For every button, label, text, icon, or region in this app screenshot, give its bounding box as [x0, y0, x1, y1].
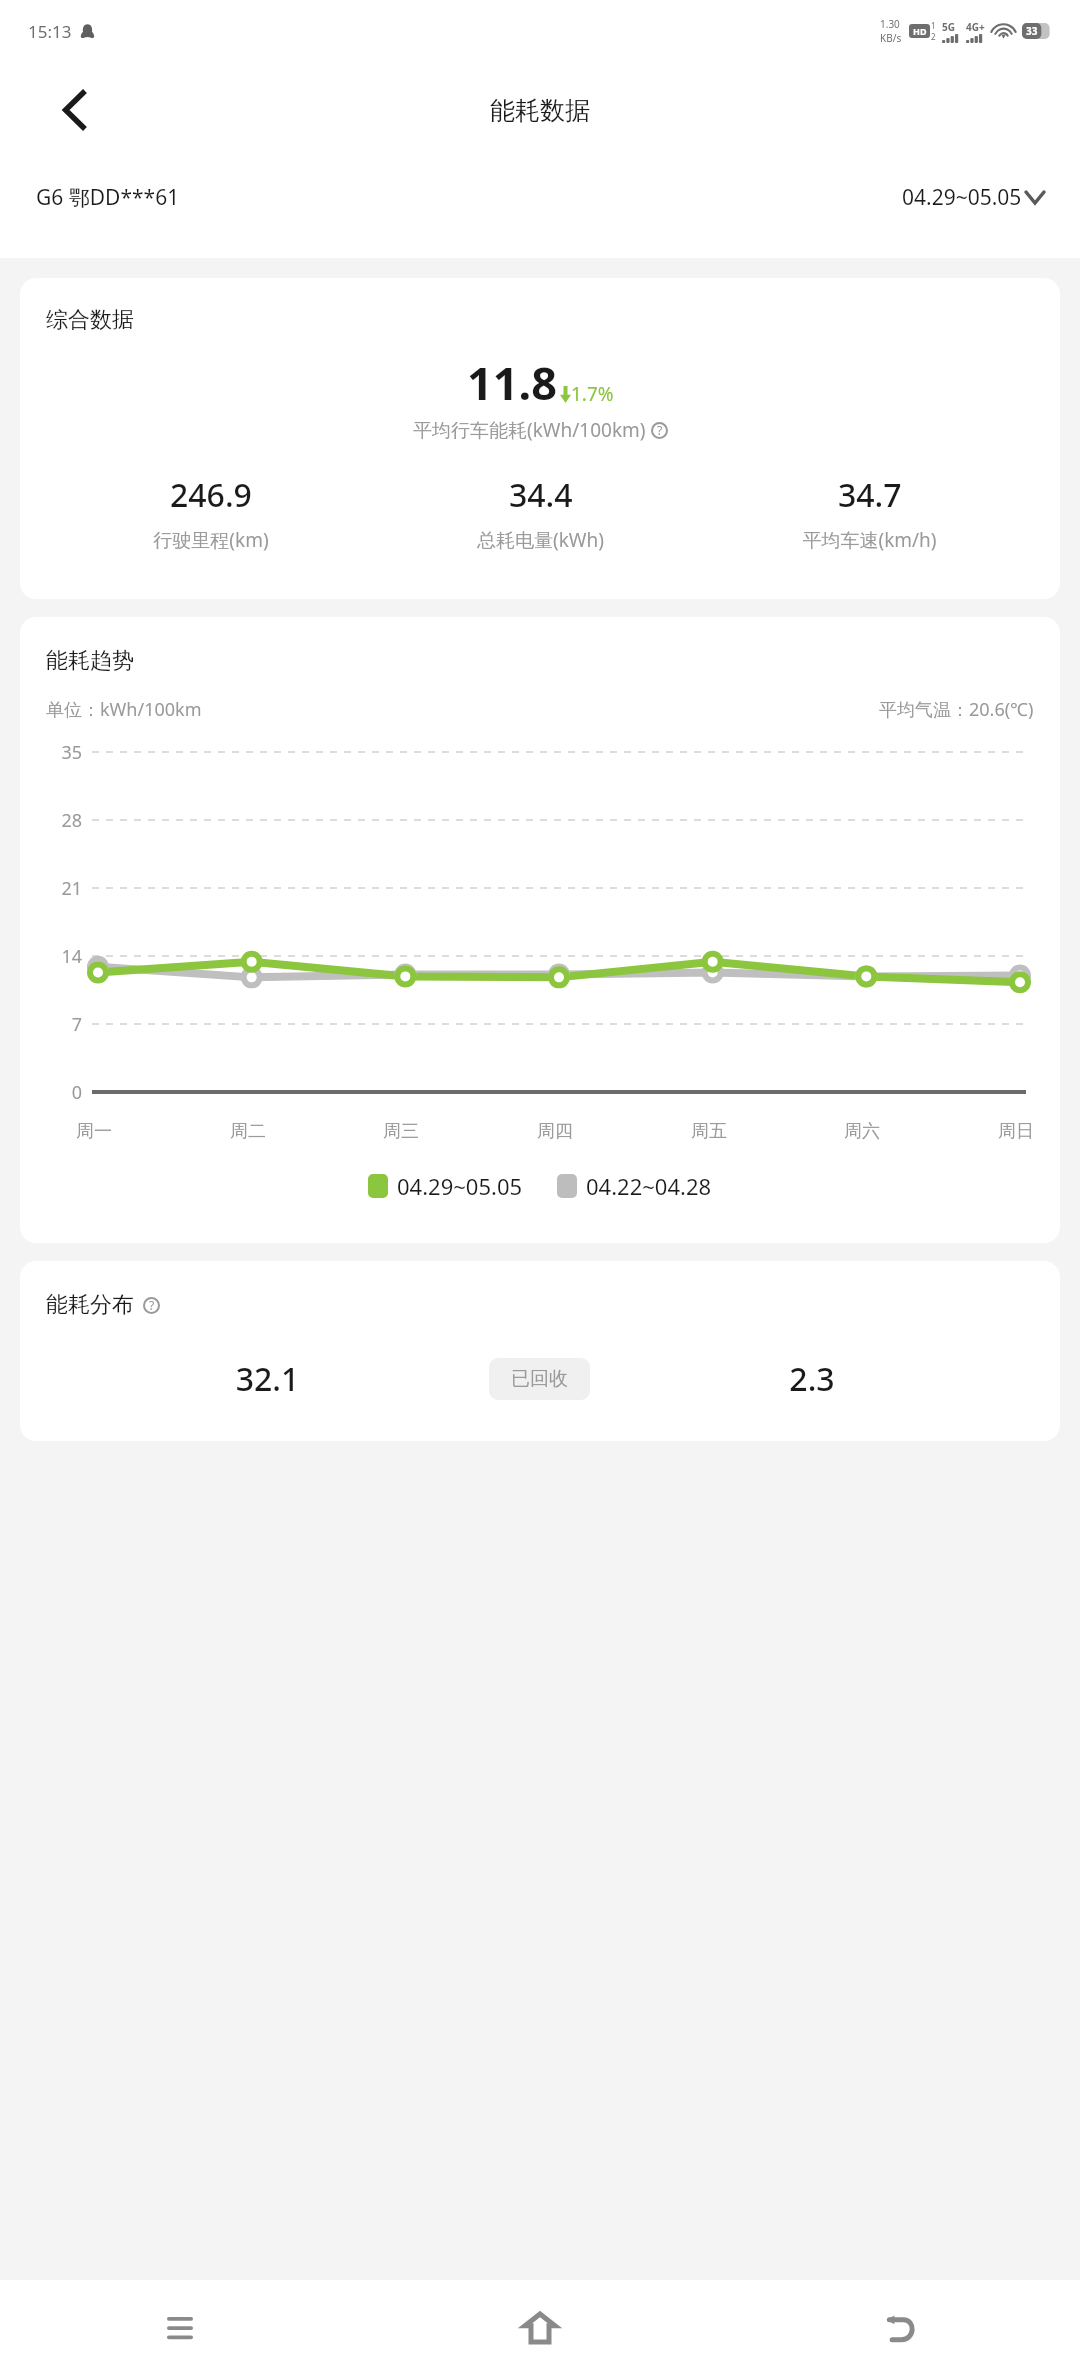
staticText: 1.7% — [571, 381, 614, 407]
button[interactable]: 34.7 — [705, 473, 1034, 553]
staticText: 11.8 — [467, 352, 557, 413]
staticText: 周六 — [844, 1120, 880, 1143]
staticText: 周一 — [76, 1120, 112, 1143]
staticText: 4G+ — [966, 20, 985, 34]
staticText: 2.3 — [590, 1357, 1034, 1401]
staticText: 33 — [1026, 24, 1038, 38]
staticText: 21 — [46, 876, 82, 901]
staticText: 周四 — [537, 1120, 573, 1143]
staticText: 1 — [931, 20, 936, 31]
button[interactable]: 246.9 — [46, 473, 376, 553]
staticText: 32.1 — [46, 1357, 489, 1401]
staticText: 能耗趋势 — [46, 647, 134, 675]
button[interactable]: 已回收 — [489, 1358, 590, 1400]
staticText: 28 — [46, 808, 82, 833]
button[interactable]: 04.22~04.28 — [557, 1171, 712, 1201]
button[interactable]: 34.4 — [376, 473, 705, 553]
staticText: 综合数据 — [46, 306, 134, 334]
staticText: 周三 — [383, 1120, 419, 1143]
button[interactable]: 04.29~05.05 — [368, 1171, 523, 1201]
staticText: HD — [913, 25, 927, 37]
staticText: 0 — [46, 1080, 82, 1105]
staticText: 15:13 — [28, 20, 72, 43]
staticText: 14 — [46, 944, 82, 969]
staticText: 34.4 — [509, 473, 573, 517]
staticText: KB/s — [880, 31, 902, 45]
staticText: 5G — [942, 20, 955, 34]
staticText: ? — [149, 1297, 155, 1314]
staticText: 246.9 — [170, 473, 252, 517]
staticText: 平均行车能耗(kWh/100km) — [413, 417, 646, 443]
button[interactable]: Home — [360, 2280, 720, 2376]
staticText: 7 — [46, 1012, 82, 1037]
staticText: 周日 — [998, 1120, 1034, 1143]
button[interactable]: Back — [44, 80, 104, 140]
staticText: 单位：kWh/100km — [46, 697, 202, 722]
button[interactable]: Back — [720, 2280, 1080, 2376]
button[interactable]: 综合数据 — [20, 278, 1060, 599]
staticText: 周二 — [230, 1120, 266, 1143]
staticText: 1.30 — [880, 17, 900, 31]
staticText: 平均车速(km/h) — [802, 527, 937, 553]
button[interactable]: 能耗分布 — [20, 1261, 1060, 1441]
staticText: 已回收 — [511, 1367, 568, 1391]
staticText: 总耗电量(kWh) — [477, 527, 604, 553]
staticText: 行驶里程(km) — [153, 527, 269, 553]
staticText: 能耗数据 — [490, 95, 590, 126]
button[interactable]: 04.29~05.05 — [902, 183, 1044, 212]
staticText: 周五 — [691, 1120, 727, 1143]
staticText: 2 — [931, 31, 936, 42]
staticText: 04.22~04.28 — [586, 1171, 712, 1201]
staticText: 35 — [46, 740, 82, 765]
staticText: ? — [657, 422, 663, 439]
staticText: 能耗分布 — [46, 1291, 134, 1319]
staticText: 04.29~05.05 — [397, 1171, 523, 1201]
staticText: 平均气温：20.6(℃) — [879, 697, 1034, 722]
button[interactable]: G6 鄂DD***61 — [36, 183, 180, 212]
button[interactable]: 能耗趋势 — [20, 617, 1060, 1243]
staticText: 04.29~05.05 — [902, 183, 1022, 212]
button[interactable]: Recent apps — [0, 2280, 360, 2376]
staticText: 34.7 — [838, 473, 902, 517]
